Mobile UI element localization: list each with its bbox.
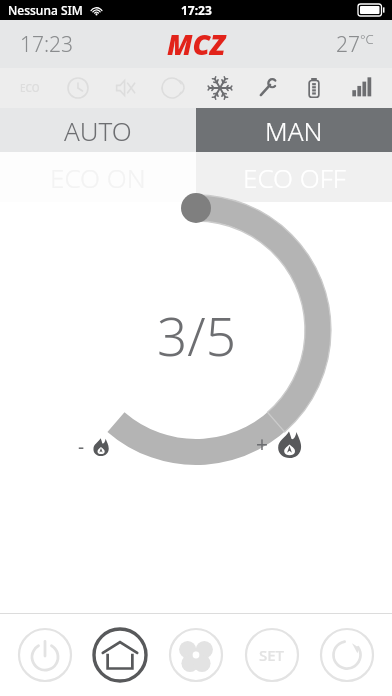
button[interactable]: Pellet level (297, 71, 331, 105)
staticText: °C (360, 30, 374, 48)
button[interactable]: Increase power (256, 430, 303, 459)
button[interactable]: Set (241, 624, 303, 686)
staticText: AUTO (64, 113, 132, 148)
button[interactable]: ECO OFF (196, 152, 392, 202)
staticText: ECO (20, 81, 40, 95)
button[interactable]: ECO ON (0, 152, 196, 202)
button[interactable]: Power (14, 624, 76, 686)
button[interactable]: Reset (316, 624, 378, 686)
staticText: 3/5 (157, 299, 236, 371)
button[interactable]: Home (89, 624, 151, 686)
button[interactable]: Maintenance (250, 71, 284, 105)
button[interactable]: Clock (61, 71, 95, 105)
staticText: MCZ (167, 25, 226, 63)
button[interactable]: MAN (196, 108, 392, 152)
staticText: MAN (265, 113, 323, 148)
staticText: 17:23 (181, 2, 212, 18)
button[interactable]: Night mode (155, 71, 189, 105)
staticText: + (256, 430, 269, 459)
staticText: ECO OFF (243, 160, 346, 195)
button[interactable]: Mute (108, 71, 142, 105)
staticText: 27 (336, 30, 360, 59)
staticText: ECO ON (50, 160, 146, 195)
staticText: - (78, 434, 85, 460)
button[interactable]: Fan (165, 624, 227, 686)
staticText: SET (259, 645, 285, 665)
staticText: 17:23 (20, 30, 74, 59)
button[interactable]: AUTO (0, 108, 196, 152)
button[interactable]: Eco (13, 71, 47, 105)
button[interactable]: Signal (345, 71, 379, 105)
button[interactable]: Decrease power (78, 434, 110, 460)
staticText: Nessuna SIM (8, 2, 83, 18)
button[interactable]: Cooling (203, 71, 237, 105)
